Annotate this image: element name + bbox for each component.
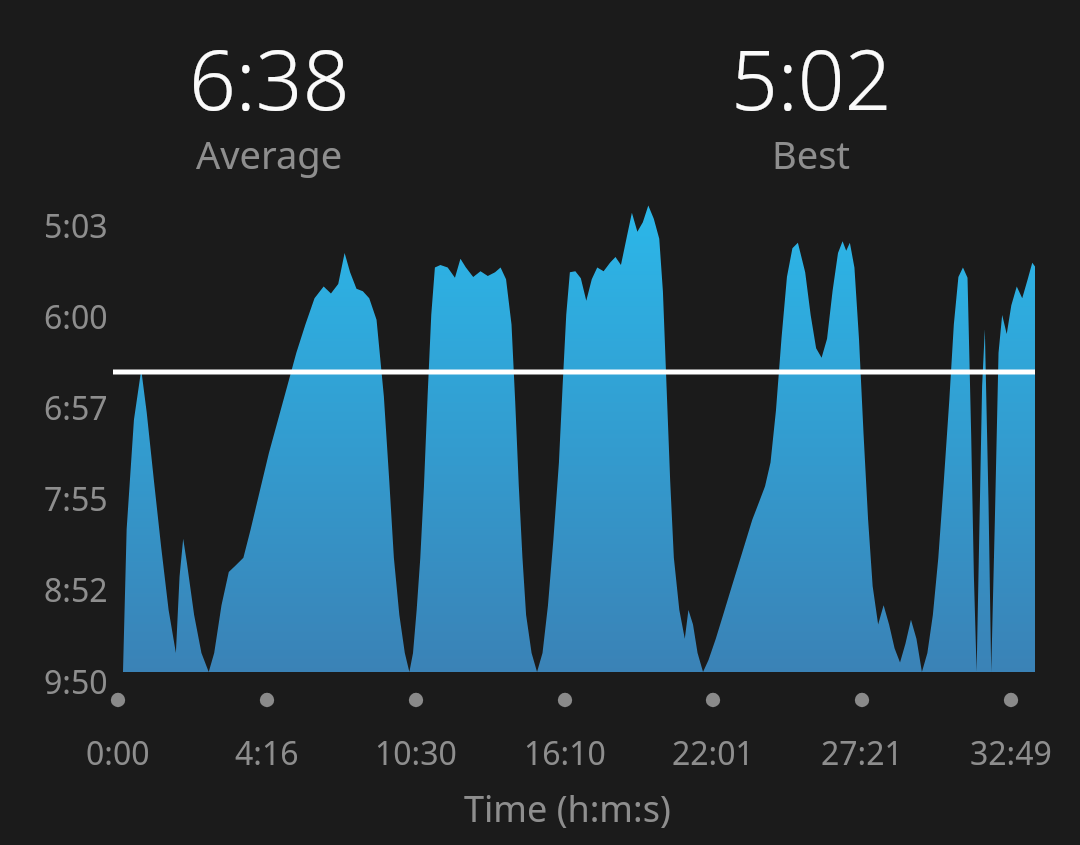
staticText: 4:16 [235,731,299,775]
staticText: 6:00 [44,295,108,339]
staticText: 0:00 [86,731,150,775]
staticText: 16:10 [524,731,606,775]
staticText: 6:57 [44,386,108,430]
staticText: 22:01 [672,731,754,775]
staticText: 9:50 [44,660,108,704]
staticText: Average [196,128,343,180]
staticText: 32:49 [970,731,1052,775]
staticText: Time (h:m:s) [464,784,671,833]
staticText: 10:30 [375,731,457,775]
staticText: 5:03 [44,204,108,248]
staticText: Best [772,128,851,180]
staticText: 5:02 [731,22,892,134]
staticText: 6:38 [189,22,350,134]
staticText: 8:52 [44,568,108,612]
staticText: 27:21 [821,731,903,775]
staticText: 7:55 [44,477,108,521]
